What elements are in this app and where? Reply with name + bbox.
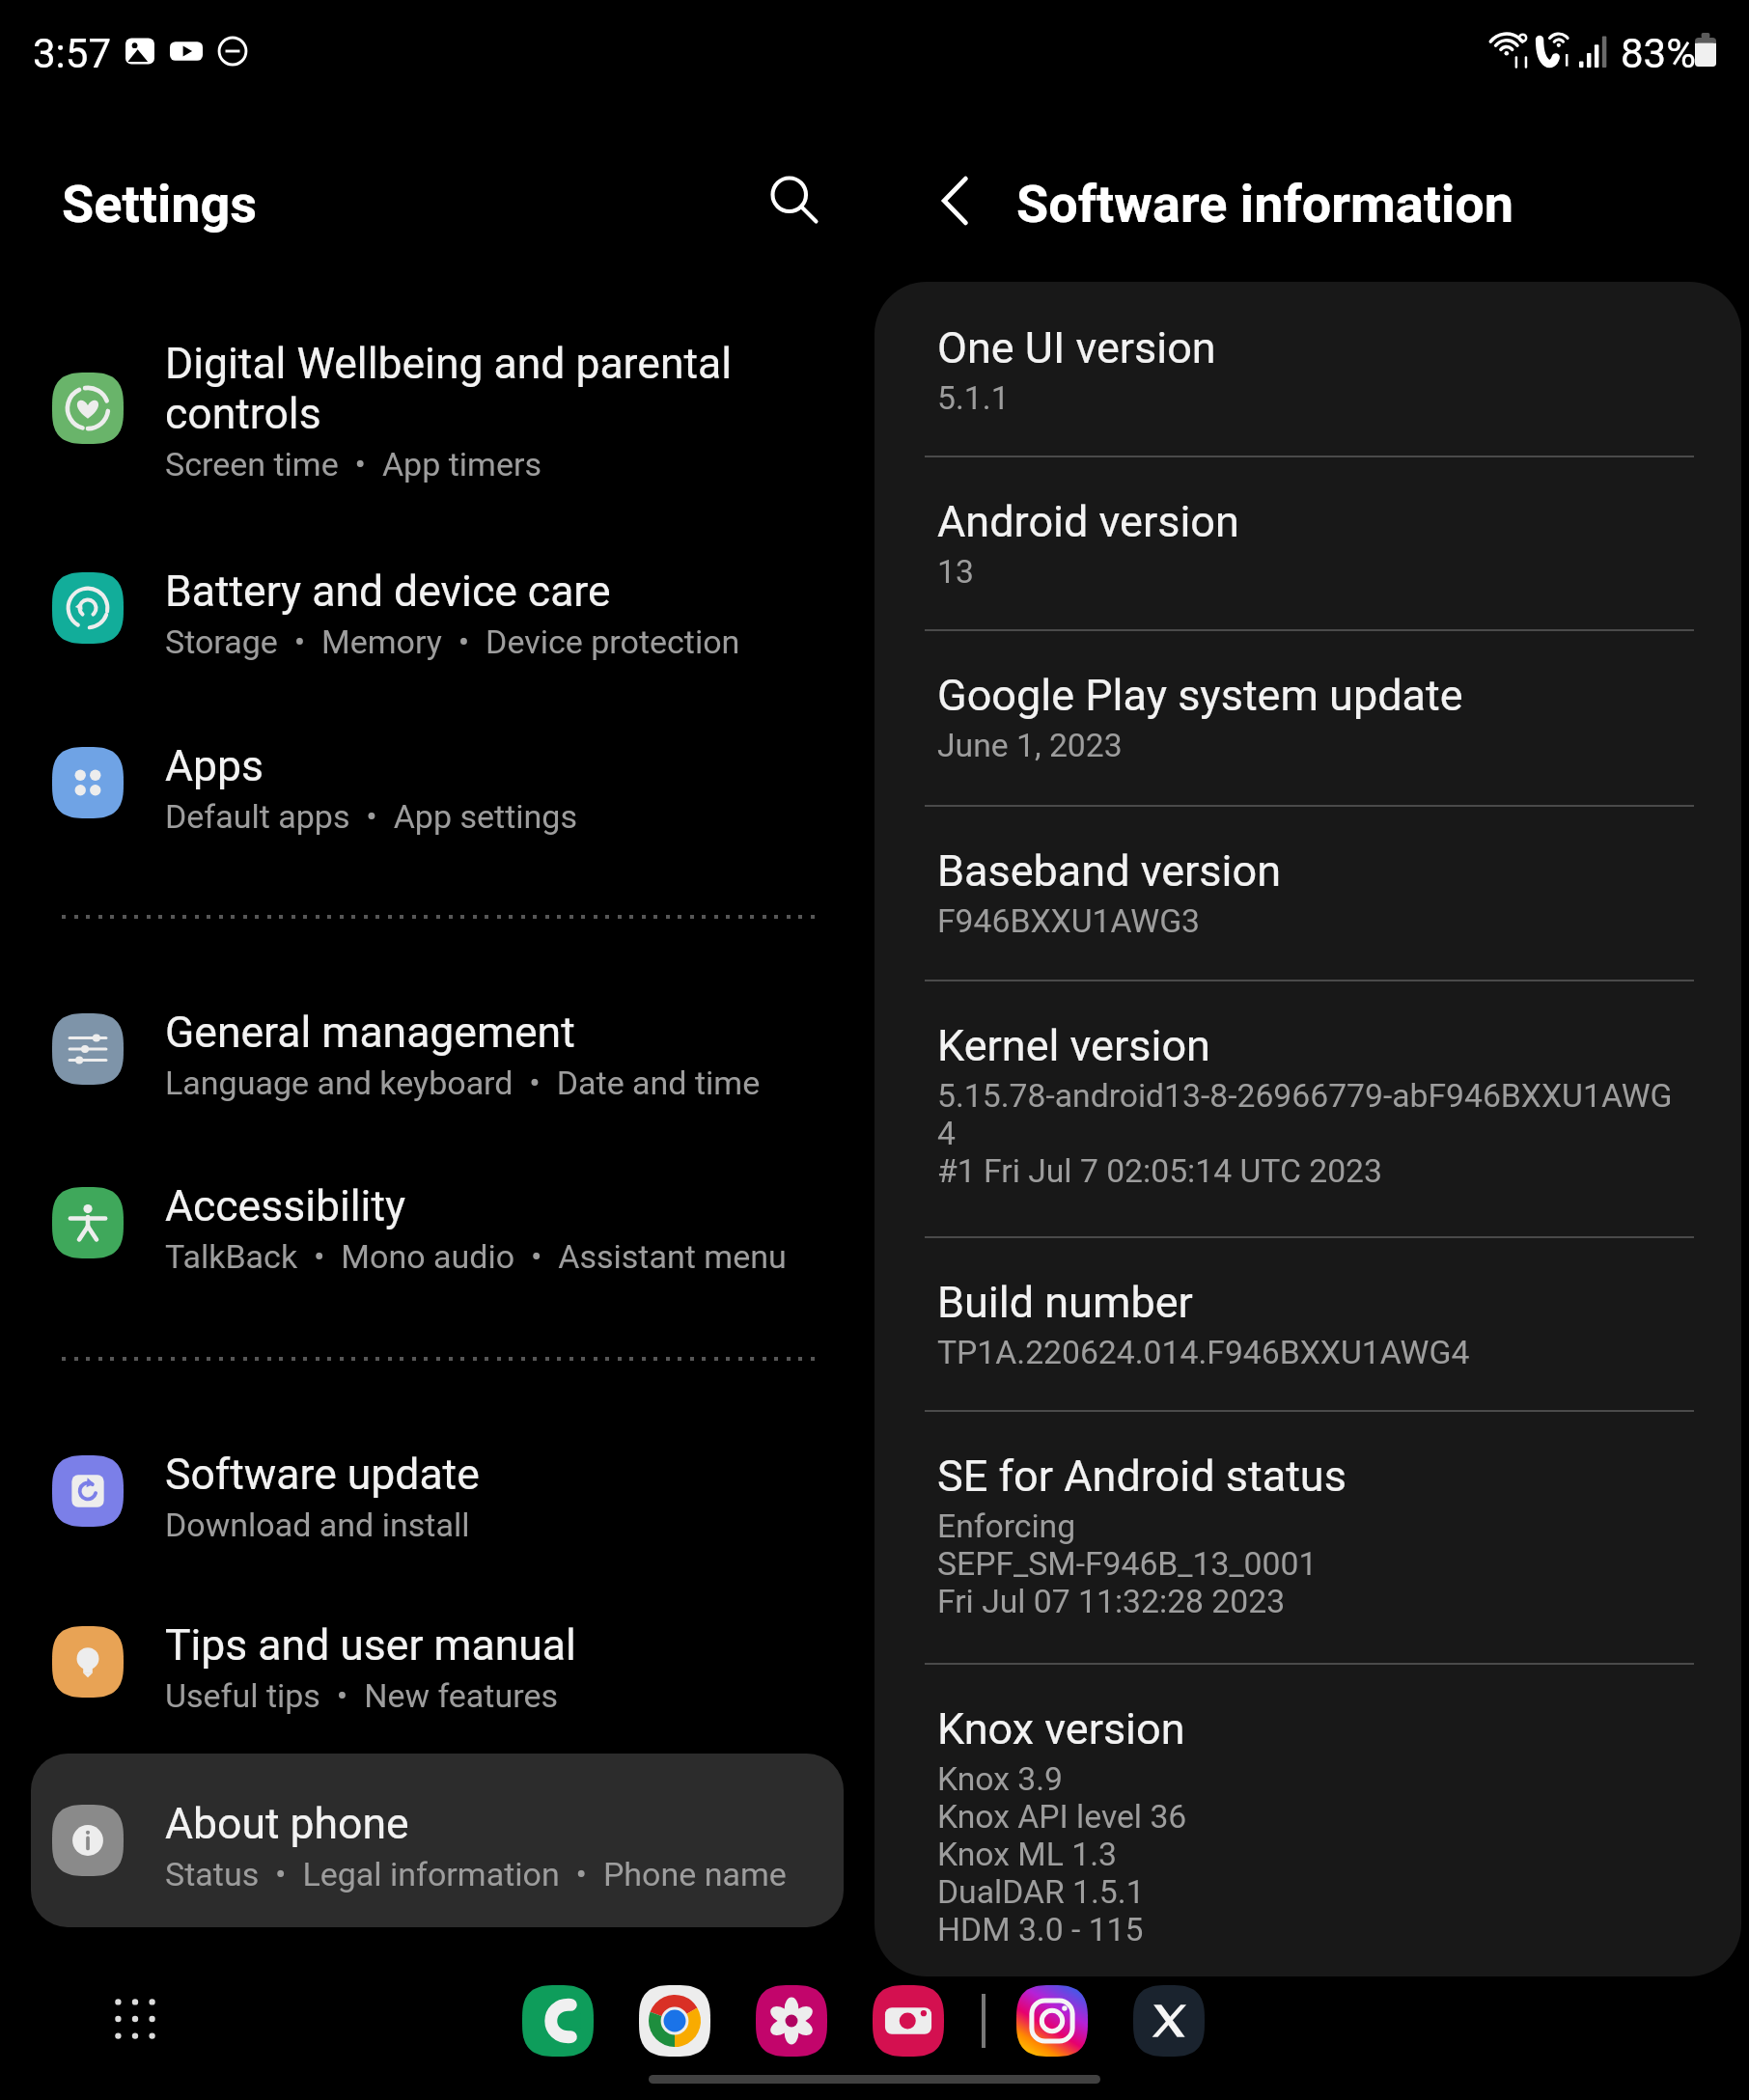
staticText: 83%: [1621, 30, 1696, 78]
button[interactable]: [874, 456, 1741, 629]
button[interactable]: X: [1133, 1985, 1205, 2057]
button[interactable]: [874, 1663, 1741, 1976]
staticText: Settings: [62, 172, 258, 235]
staticText: Battery and device care: [165, 566, 611, 617]
button[interactable]: [0, 1138, 874, 1308]
staticText: 5.1.1: [937, 379, 1010, 417]
staticText: F946BXXU1AWG3: [937, 902, 1201, 940]
staticText: TP1A.220624.014.F946BXXU1AWG4: [937, 1334, 1470, 1371]
button[interactable]: Instagram: [1016, 1985, 1088, 2057]
button[interactable]: [874, 1236, 1741, 1410]
staticText: Software update: [165, 1450, 480, 1500]
staticText: SE for Android status: [937, 1450, 1346, 1502]
button[interactable]: [0, 964, 874, 1134]
button[interactable]: All apps: [106, 1990, 164, 2048]
staticText: About phone: [165, 1799, 409, 1849]
staticText: Useful tips • New features: [165, 1673, 558, 1716]
staticText: Kernel version: [937, 1019, 1210, 1071]
staticText: Storage • Memory • Device protection: [165, 620, 740, 662]
staticText: Language and keyboard • Date and time: [165, 1061, 761, 1103]
staticText: General management: [165, 1008, 575, 1058]
staticText: Digital Wellbeing and parental controls: [165, 339, 733, 439]
button[interactable]: [874, 980, 1741, 1236]
button[interactable]: [874, 805, 1741, 980]
staticText: TalkBack • Mono audio • Assistant menu: [165, 1234, 787, 1277]
button[interactable]: [0, 1406, 874, 1576]
staticText: One UI version: [937, 321, 1216, 373]
staticText: Tips and user manual: [165, 1620, 576, 1671]
staticText: Google Play system update: [937, 669, 1463, 721]
button[interactable]: [0, 1577, 874, 1747]
staticText: Apps: [165, 741, 264, 791]
button[interactable]: [874, 629, 1741, 805]
button[interactable]: Camera: [873, 1985, 944, 2057]
button[interactable]: Chrome: [639, 1985, 710, 2057]
staticText: Knox version: [937, 1702, 1185, 1755]
staticText: Accessibility: [165, 1181, 406, 1231]
button[interactable]: [874, 282, 1741, 456]
button[interactable]: [0, 309, 874, 508]
staticText: Default apps • App settings: [165, 794, 577, 837]
button[interactable]: [0, 523, 874, 693]
staticText: Knox 3.9 Knox API level 36 Knox ML 1.3 D…: [937, 1760, 1187, 1948]
staticText: 3:57: [33, 30, 111, 78]
staticText: Software information: [1016, 172, 1514, 235]
button[interactable]: [31, 1754, 844, 1927]
button[interactable]: [0, 698, 874, 868]
staticText: Screen time • App timers: [165, 442, 542, 484]
staticText: Baseband version: [937, 844, 1282, 897]
staticText: Android version: [937, 495, 1239, 547]
button[interactable]: Search: [748, 160, 829, 241]
button[interactable]: [874, 1410, 1741, 1663]
staticText: Enforcing SEPF_SM-F946B_13_0001 Fri Jul …: [937, 1507, 1318, 1620]
button[interactable]: Phone: [522, 1985, 594, 2057]
staticText: 5.15.78‑android13‑8‑26966779‑abF946BXXU1…: [937, 1077, 1682, 1190]
staticText: Download and install: [165, 1503, 470, 1545]
staticText: Build number: [937, 1276, 1193, 1328]
staticText: 13: [937, 553, 974, 591]
staticText: June 1, 2023: [937, 727, 1123, 764]
button[interactable]: Back: [918, 164, 991, 237]
staticText: Status • Legal information • Phone name: [165, 1852, 787, 1894]
button[interactable]: Gallery: [756, 1985, 827, 2057]
